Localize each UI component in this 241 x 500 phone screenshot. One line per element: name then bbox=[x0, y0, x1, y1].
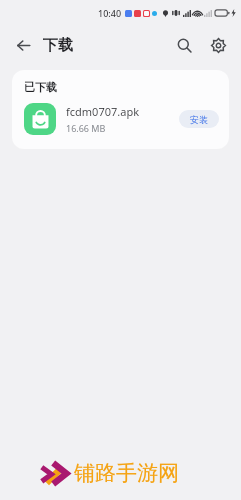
button[interactable]: fcdm0707.apk bbox=[24, 103, 219, 135]
button[interactable]: Back bbox=[8, 30, 38, 60]
staticText: 已下载 bbox=[24, 80, 57, 94]
staticText: 安装 bbox=[190, 114, 208, 125]
staticText: 10:40 bbox=[98, 7, 122, 19]
staticText: 铺路手游网 bbox=[74, 460, 179, 486]
button[interactable]: Settings bbox=[203, 30, 233, 60]
button[interactable]: 安装 bbox=[179, 110, 219, 128]
staticText: fcdm0707.apk bbox=[66, 104, 140, 119]
button[interactable]: Search bbox=[169, 30, 199, 60]
staticText: 16.66 MB bbox=[66, 122, 106, 134]
staticText: 下载 bbox=[43, 36, 73, 55]
